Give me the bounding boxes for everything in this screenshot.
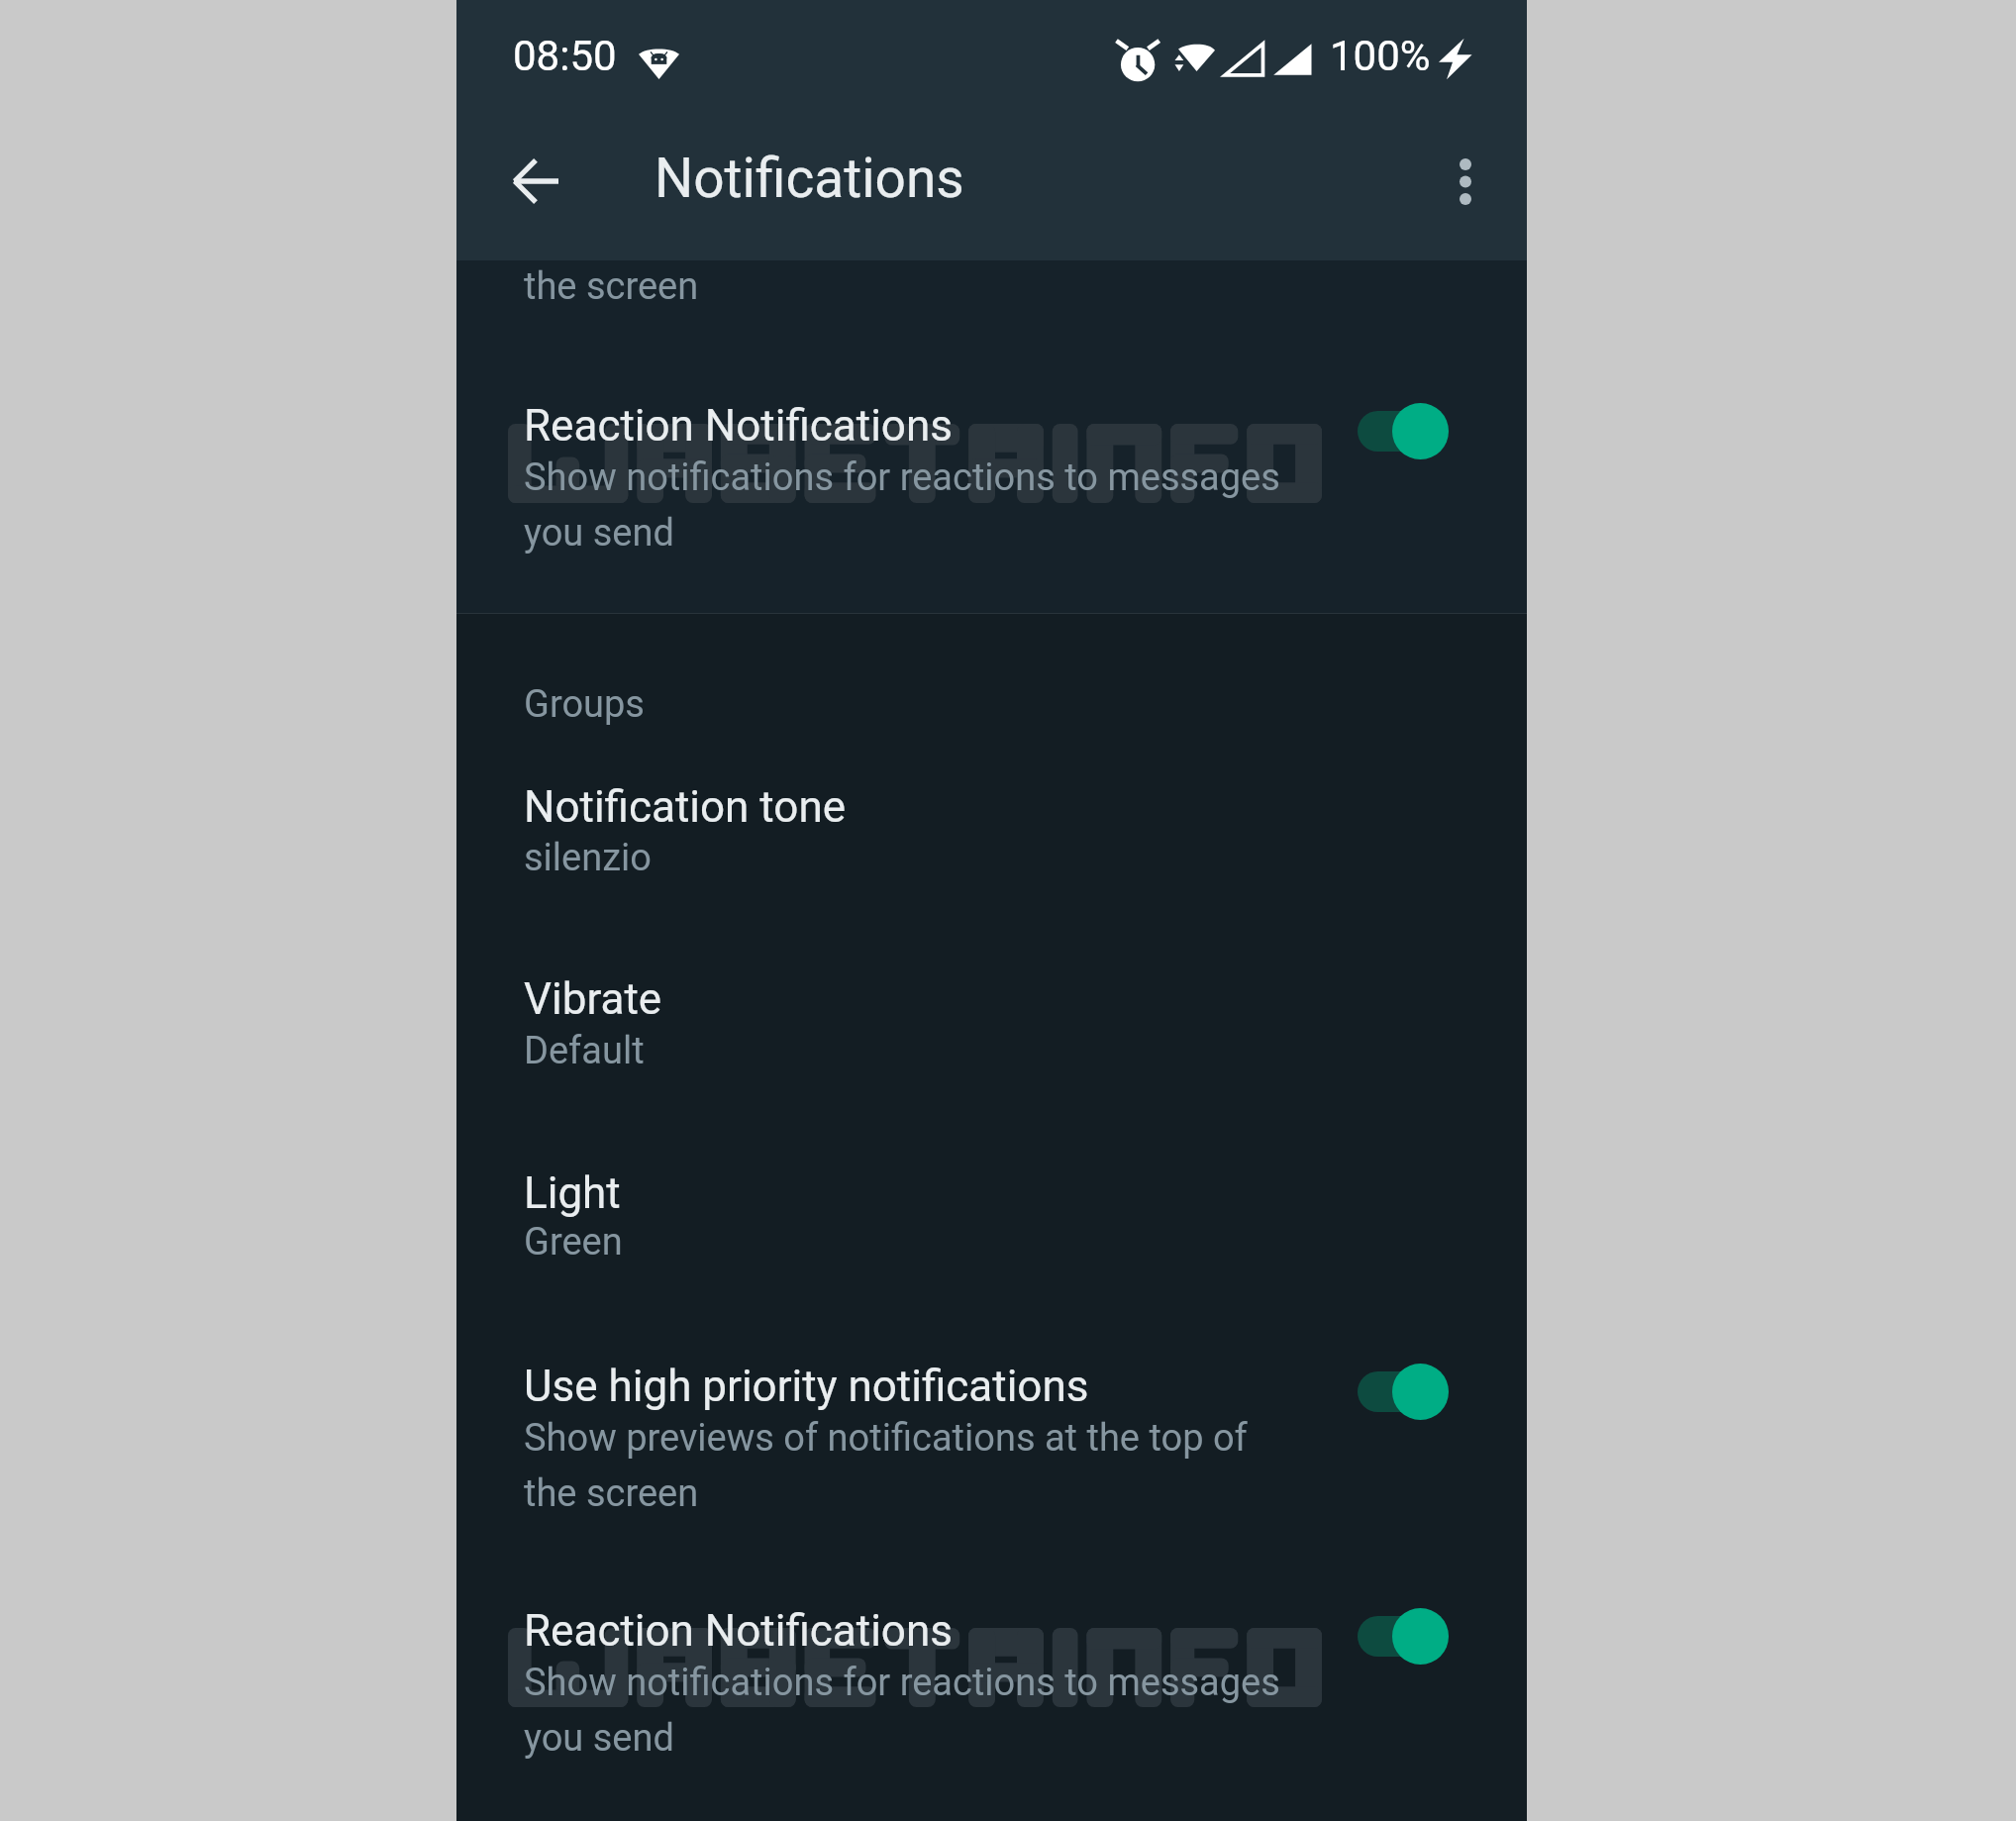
button[interactable]: Toggle setting: [1346, 1350, 1461, 1433]
staticText: Use high priority notifications: [524, 1361, 1089, 1412]
staticText: Vibrate: [524, 973, 662, 1025]
staticText: silenzio: [524, 836, 652, 880]
button[interactable]: Light: [456, 1141, 1527, 1314]
staticText: the screen: [524, 264, 699, 309]
staticText: Reaction Notifications: [524, 400, 953, 452]
button[interactable]: Reaction Notifications: [456, 342, 1527, 609]
button[interactable]: More options: [1423, 139, 1508, 224]
staticText: you send: [524, 1716, 674, 1761]
staticText: 100%: [1330, 32, 1431, 80]
button[interactable]: Toggle setting: [1346, 1594, 1461, 1677]
staticText: Reaction Notifications: [524, 1605, 953, 1657]
button[interactable]: Use high priority notifications: [456, 1332, 1527, 1569]
staticText: Notification tone: [524, 781, 847, 833]
staticText: Groups: [524, 682, 645, 727]
button[interactable]: Back: [493, 139, 578, 224]
button[interactable]: Reaction Notifications: [456, 1576, 1527, 1814]
button[interactable]: Notification tone: [456, 755, 1527, 928]
staticText: Show notifications for reactions to mess…: [524, 1661, 1280, 1705]
staticText: Show notifications for reactions to mess…: [524, 455, 1280, 500]
staticText: Green: [524, 1220, 623, 1265]
staticText: the screen: [524, 1471, 699, 1516]
staticText: Default: [524, 1029, 645, 1073]
staticText: Show previews of notifications at the to…: [524, 1416, 1248, 1461]
button[interactable]: Vibrate: [456, 948, 1527, 1121]
staticText: Light: [524, 1167, 621, 1219]
button[interactable]: Toggle setting: [1346, 389, 1461, 472]
staticText: you send: [524, 511, 674, 556]
staticText: 08:50: [513, 32, 617, 80]
staticText: Notifications: [655, 147, 964, 210]
